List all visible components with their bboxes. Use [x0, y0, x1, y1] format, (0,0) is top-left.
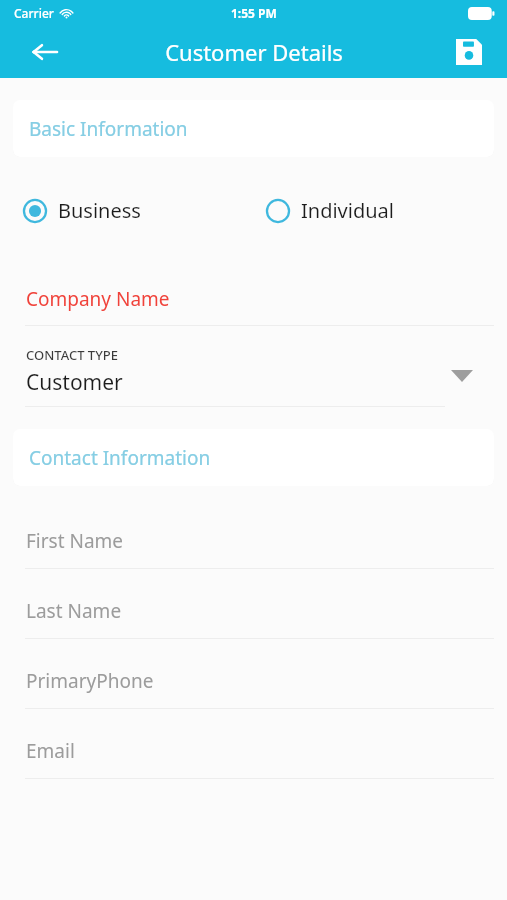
staticText: Basic Information: [29, 116, 188, 142]
button[interactable]: Company Name: [0, 286, 507, 326]
button[interactable]: PrimaryPhone: [0, 668, 507, 709]
button[interactable]: Basic Information: [13, 100, 494, 157]
staticText: Individual: [301, 197, 394, 224]
button[interactable]: Back: [22, 30, 66, 74]
button[interactable]: Save: [447, 30, 491, 74]
button[interactable]: CONTACT TYPE: [0, 346, 507, 407]
button[interactable]: Last Name: [0, 598, 507, 639]
staticText: Contact Information: [29, 445, 211, 471]
staticText: Email: [26, 738, 75, 764]
button[interactable]: Individual: [266, 197, 394, 224]
staticText: 1:55 PM: [231, 5, 277, 21]
staticText: Business: [58, 197, 141, 224]
button[interactable]: First Name: [0, 528, 507, 569]
button[interactable]: Email: [0, 738, 507, 779]
staticText: Carrier: [14, 5, 54, 21]
staticText: First Name: [26, 528, 124, 554]
button[interactable]: Open contact type list: [449, 363, 475, 389]
staticText: Last Name: [26, 598, 122, 624]
staticText: Customer Details: [165, 37, 343, 67]
staticText: PrimaryPhone: [26, 668, 154, 694]
staticText: CONTACT TYPE: [26, 346, 118, 364]
staticText: Company Name: [26, 286, 170, 312]
button[interactable]: Contact Information: [13, 429, 494, 486]
staticText: Customer: [26, 368, 123, 397]
button[interactable]: Business: [23, 197, 141, 224]
